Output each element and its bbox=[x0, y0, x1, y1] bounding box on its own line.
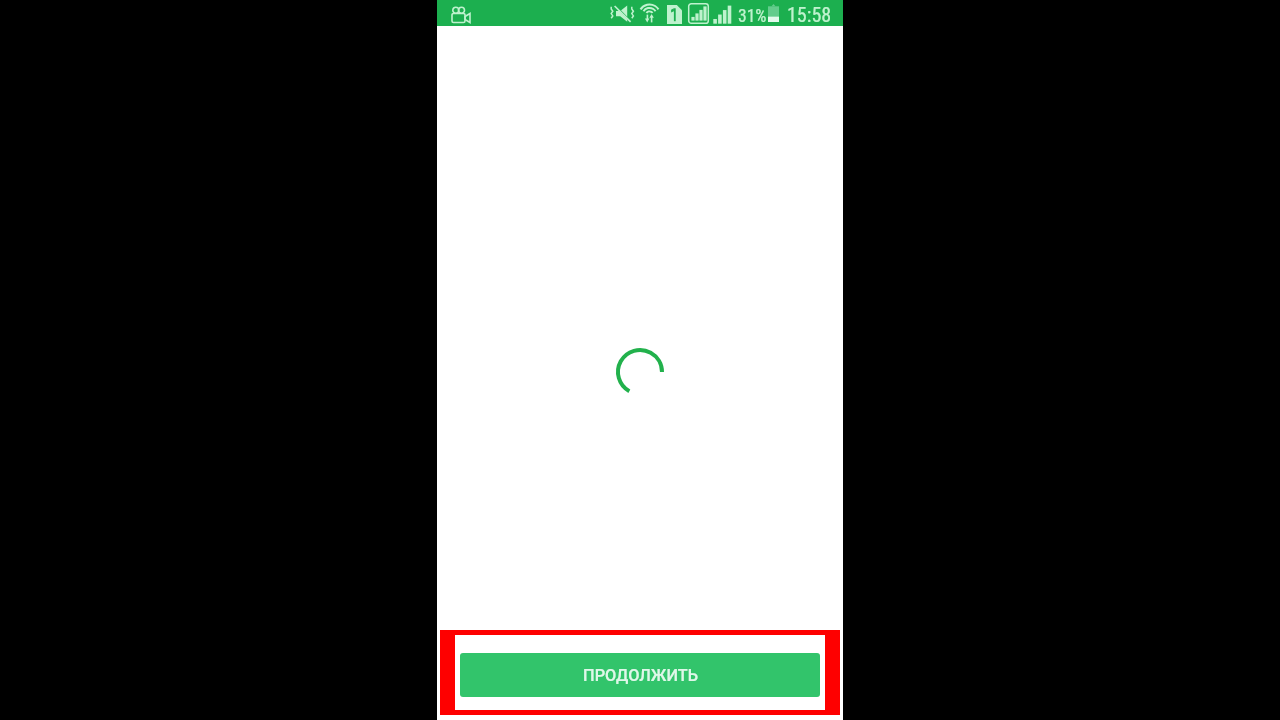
staticText: 31% bbox=[738, 6, 767, 27]
button[interactable]: ПРОДОЛЖИТЬ bbox=[460, 653, 820, 697]
staticText: 15:58 bbox=[787, 3, 832, 26]
other: Battery 31 percent bbox=[768, 4, 779, 22]
other: Sound muted, vibrate bbox=[610, 4, 635, 23]
other: Mobile data signal bbox=[688, 3, 709, 24]
other: Wi-Fi connected bbox=[639, 3, 660, 23]
other: Screen recorder bbox=[451, 6, 471, 23]
staticText: ПРОДОЛЖИТЬ bbox=[583, 666, 698, 685]
other: SIM card 1 bbox=[667, 5, 682, 24]
other: Loading bbox=[616, 348, 664, 396]
other: Mobile network signal bbox=[713, 5, 732, 24]
